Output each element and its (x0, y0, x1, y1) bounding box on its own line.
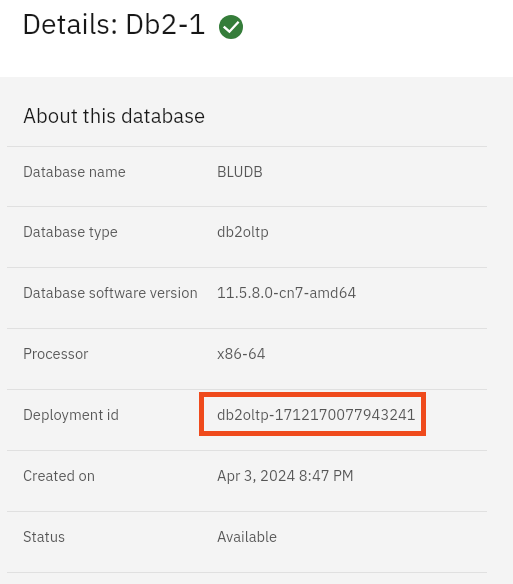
button[interactable]: Database software version (0, 267, 513, 328)
staticText: db2oltp (217, 222, 269, 241)
staticText: About this database (23, 102, 206, 128)
staticText: Apr 3, 2024 8:47 PM (217, 466, 354, 485)
staticText: Database name (23, 162, 126, 181)
button[interactable]: Database name (0, 146, 513, 207)
button[interactable]: Database type (0, 206, 513, 267)
button[interactable]: Processor (0, 328, 513, 389)
staticText: BLUDB (217, 162, 263, 181)
staticText: Available (217, 527, 278, 546)
staticText: Status (23, 527, 66, 546)
button[interactable]: Deployment id (0, 389, 513, 450)
staticText: Deployment id (23, 405, 119, 424)
button[interactable]: Created on (0, 450, 513, 511)
staticText: Processor (23, 344, 89, 363)
staticText: Database type (23, 222, 118, 241)
staticText: Details: Db2-1 (22, 5, 206, 42)
staticText: 11.5.8.0-cn7-amd64 (217, 283, 357, 302)
staticText: db2oltp-1712170077943241 (217, 405, 416, 424)
staticText: Database software version (23, 283, 198, 302)
button[interactable]: Status: running (219, 15, 243, 39)
staticText: x86-64 (217, 344, 266, 363)
button[interactable]: Status (0, 511, 513, 572)
staticText: Created on (23, 466, 96, 485)
